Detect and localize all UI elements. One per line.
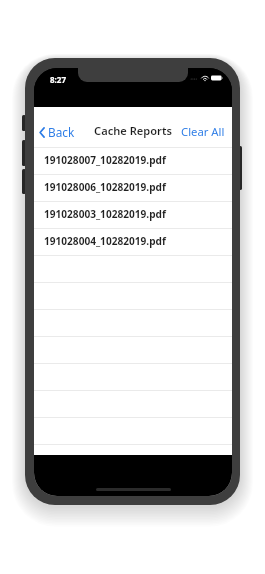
button[interactable] [34, 418, 232, 445]
button[interactable] [34, 391, 232, 418]
button[interactable]: Clear All [173, 120, 232, 143]
button[interactable] [34, 445, 232, 472]
staticText: 8:27 [50, 74, 66, 85]
button[interactable]: 191028006_10282019.pdf [34, 175, 232, 202]
button[interactable] [34, 283, 232, 310]
button[interactable]: Back [34, 120, 79, 144]
button[interactable] [34, 256, 232, 283]
staticText: 191028003_10282019.pdf [44, 207, 166, 221]
staticText: 191028006_10282019.pdf [44, 180, 166, 194]
staticText: Back [48, 124, 75, 140]
button[interactable]: 191028007_10282019.pdf [34, 148, 232, 175]
button[interactable] [34, 337, 232, 364]
button[interactable]: 191028003_10282019.pdf [34, 202, 232, 229]
staticText: Cache Reports [94, 123, 172, 138]
button[interactable]: 191028004_10282019.pdf [34, 229, 232, 256]
staticText: Clear All [181, 124, 225, 139]
staticText: 191028004_10282019.pdf [44, 234, 166, 248]
button[interactable] [34, 310, 232, 337]
staticText: 191028007_10282019.pdf [44, 153, 166, 167]
button[interactable] [34, 364, 232, 391]
